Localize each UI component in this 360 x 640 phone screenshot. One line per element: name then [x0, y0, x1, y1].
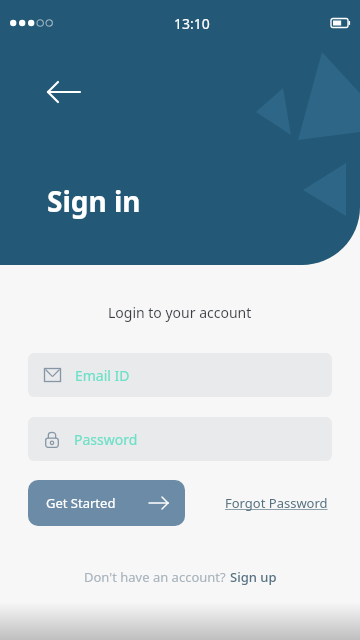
- staticText: Password: [74, 430, 138, 449]
- staticText: 13:10: [174, 14, 210, 33]
- button[interactable]: Back: [40, 68, 88, 116]
- button[interactable]: Forgot Password: [221, 486, 332, 520]
- staticText: Don't have an account?: [84, 568, 230, 586]
- staticText: Sign up: [230, 568, 277, 586]
- staticText: Login to your account: [108, 303, 252, 322]
- staticText: Forgot Password: [225, 494, 328, 512]
- button[interactable]: Sign up: [230, 568, 277, 586]
- button[interactable]: Email ID: [28, 353, 332, 397]
- button[interactable]: Password: [28, 417, 332, 461]
- staticText: Get Started: [46, 494, 116, 512]
- staticText: Email ID: [75, 366, 130, 385]
- button[interactable]: Get Started: [28, 480, 185, 526]
- staticText: Sign in: [47, 182, 141, 220]
